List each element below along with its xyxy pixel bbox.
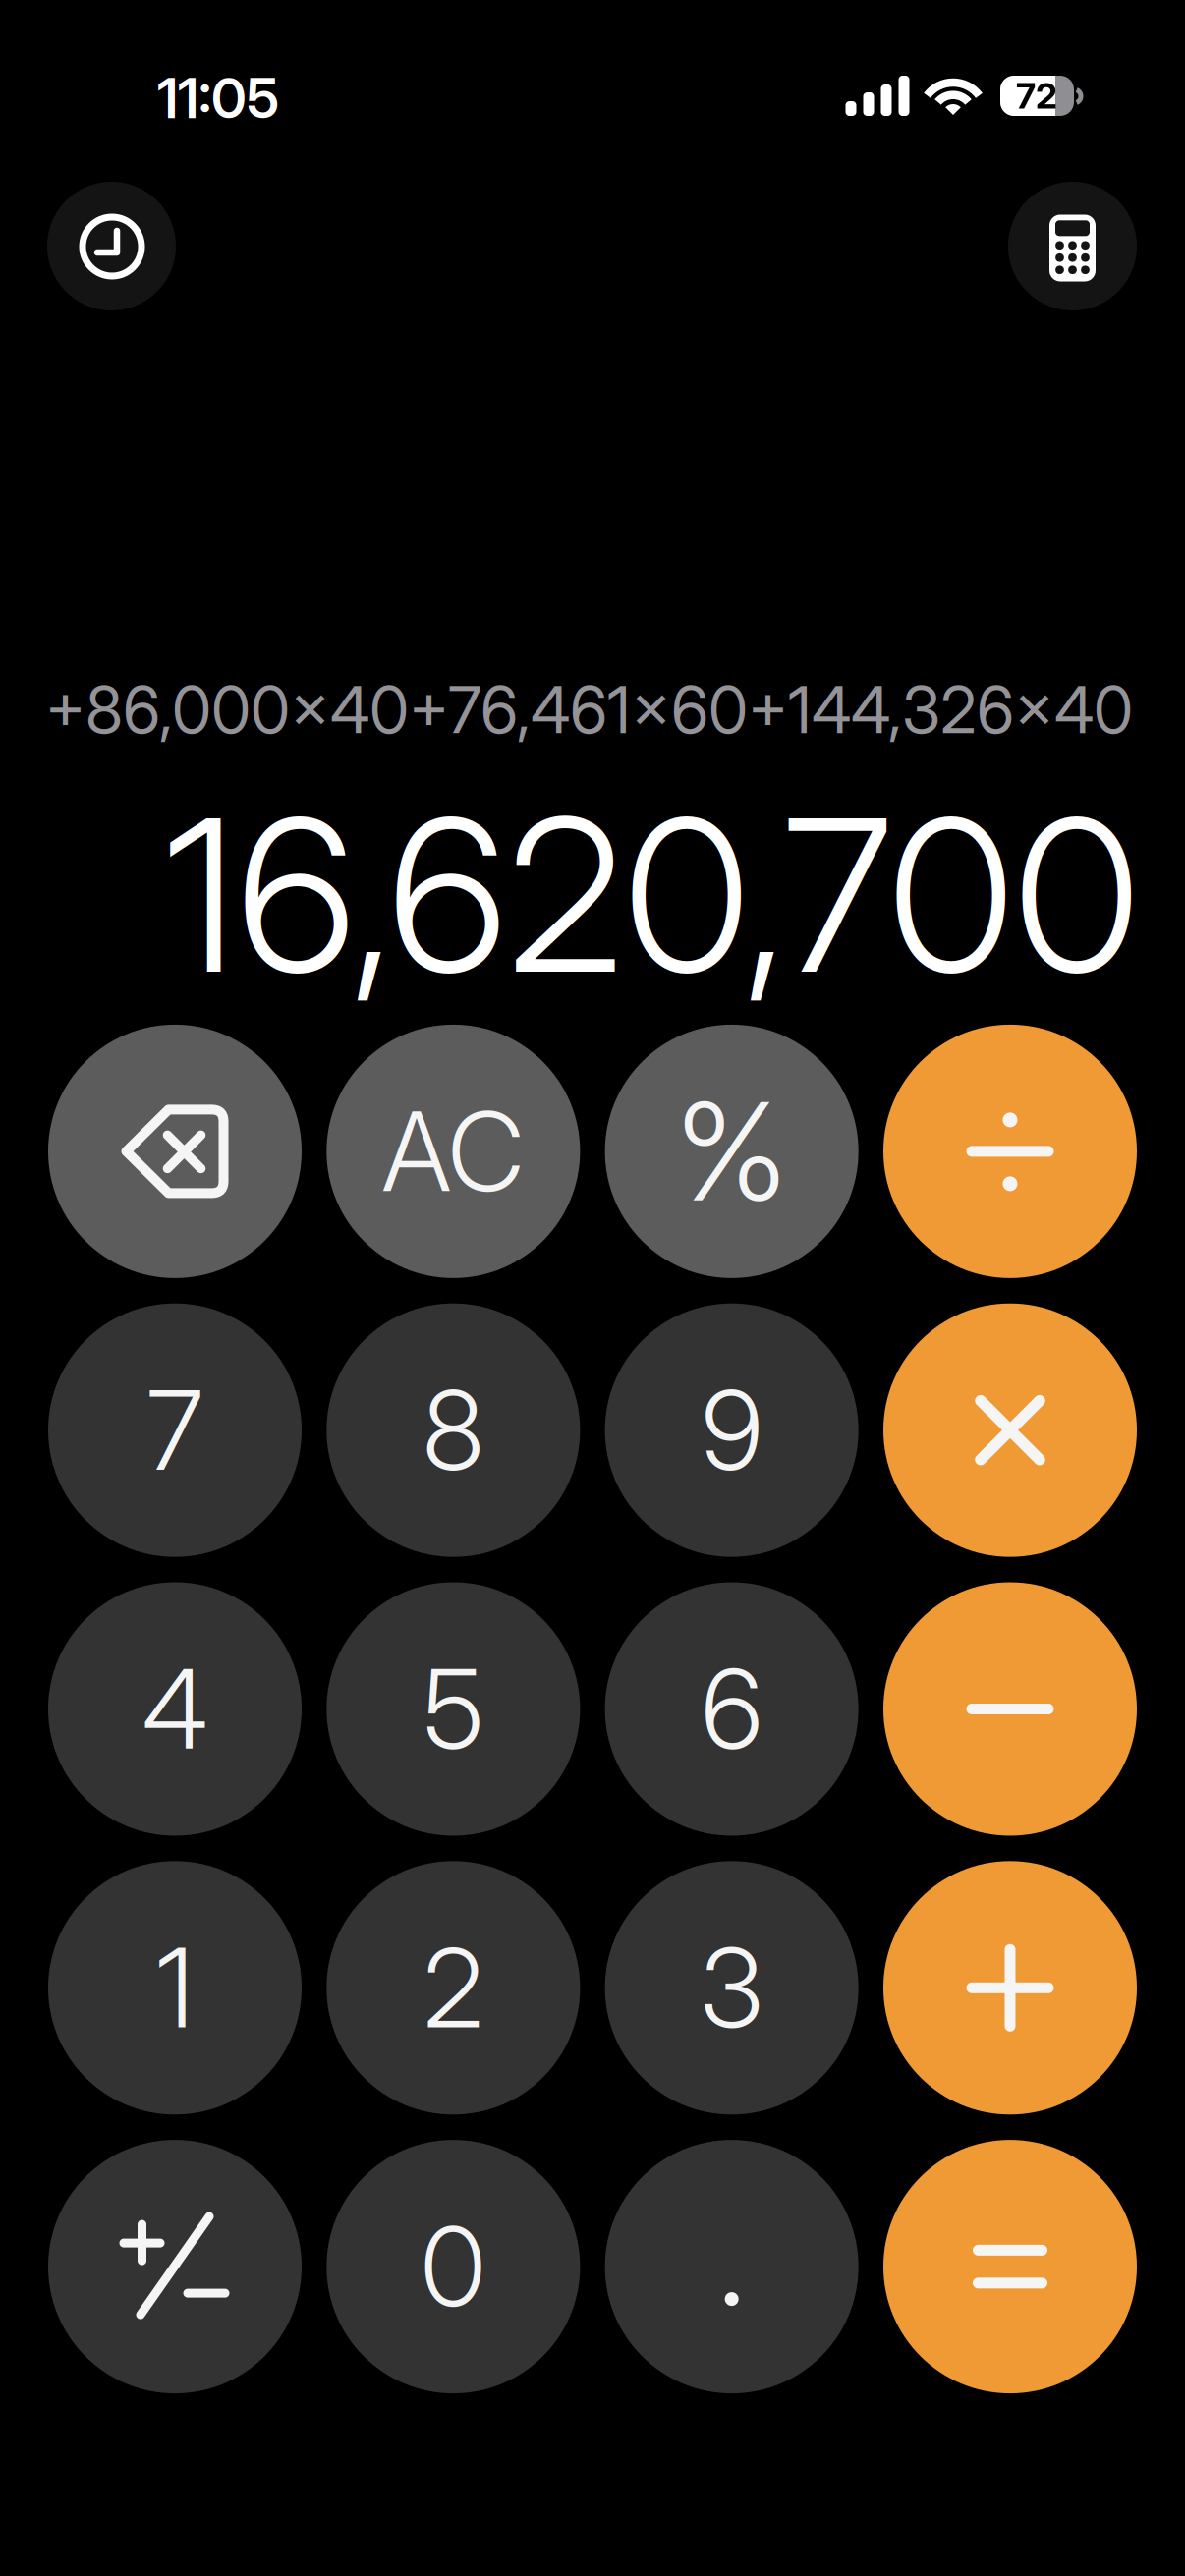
button[interactable]: 5 bbox=[327, 1582, 580, 1836]
button[interactable] bbox=[883, 2140, 1137, 2393]
button[interactable] bbox=[883, 1861, 1137, 2115]
button[interactable]: AC bbox=[327, 1025, 580, 1278]
button[interactable] bbox=[48, 2140, 302, 2393]
staticText: 0 bbox=[421, 2201, 486, 2332]
button[interactable]: 3 bbox=[605, 1861, 858, 2115]
staticText: 72 bbox=[1016, 74, 1057, 117]
staticText: AC bbox=[382, 1086, 525, 1217]
button[interactable]: % bbox=[605, 1025, 858, 1278]
button[interactable]: 9 bbox=[605, 1303, 858, 1557]
staticText: 3 bbox=[700, 1922, 763, 2054]
staticText: 6 bbox=[701, 1643, 762, 1775]
button[interactable] bbox=[883, 1303, 1137, 1557]
staticText: 5 bbox=[423, 1643, 483, 1775]
staticText: 8 bbox=[423, 1364, 484, 1496]
staticText: 11:05 bbox=[157, 65, 279, 131]
staticText: 7 bbox=[147, 1364, 203, 1496]
staticText: 1 bbox=[156, 1922, 194, 2054]
staticText: % bbox=[676, 1070, 788, 1233]
button[interactable]: Calculator keypad bbox=[1008, 182, 1137, 310]
button[interactable] bbox=[605, 2140, 858, 2393]
staticText: 4 bbox=[142, 1643, 208, 1775]
button[interactable]: 0 bbox=[327, 2140, 580, 2393]
staticText: 2 bbox=[423, 1922, 483, 2054]
staticText: +86,000×40+76,461×60+144,326×40 bbox=[45, 671, 1133, 749]
button[interactable] bbox=[883, 1582, 1137, 1836]
button[interactable]: 1 bbox=[48, 1861, 302, 2115]
button[interactable]: 6 bbox=[605, 1582, 858, 1836]
button[interactable]: 4 bbox=[48, 1582, 302, 1836]
button[interactable]: 7 bbox=[48, 1303, 302, 1557]
button[interactable] bbox=[48, 1025, 302, 1278]
staticText: 9 bbox=[701, 1364, 762, 1496]
button[interactable]: 2 bbox=[327, 1861, 580, 2115]
button[interactable]: 8 bbox=[327, 1303, 580, 1557]
button[interactable]: History bbox=[47, 182, 176, 310]
staticText: 16,620,700 bbox=[164, 767, 1140, 1022]
button[interactable] bbox=[883, 1025, 1137, 1278]
